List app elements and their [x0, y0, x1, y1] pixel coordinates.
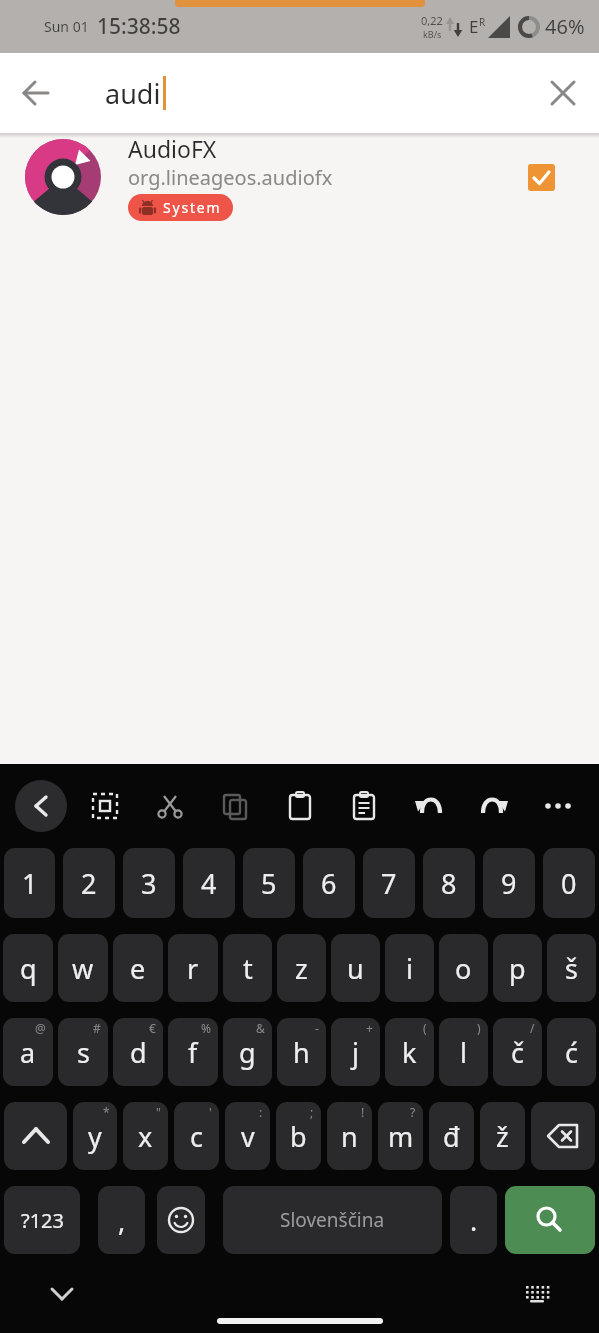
button[interactable]: [527, 57, 599, 129]
button[interactable]: [144, 780, 196, 832]
button[interactable]: [531, 1102, 595, 1170]
button[interactable]: [505, 1186, 595, 1254]
staticText: R: [479, 15, 486, 29]
button[interactable]: 4: [183, 848, 235, 918]
button[interactable]: ć: [547, 1018, 596, 1086]
staticText: 46%: [545, 13, 585, 40]
button[interactable]: p: [493, 934, 542, 1002]
staticText: .: [470, 1202, 478, 1239]
button[interactable]: d: [113, 1018, 163, 1086]
button[interactable]: u: [331, 934, 380, 1002]
button[interactable]: 6: [303, 848, 355, 918]
button[interactable]: e: [113, 934, 163, 1002]
staticText: 6: [321, 865, 337, 902]
button[interactable]: [209, 780, 261, 832]
staticText: c: [190, 1118, 203, 1155]
button[interactable]: m: [378, 1102, 423, 1170]
staticText: E: [469, 15, 479, 38]
button[interactable]: t: [223, 934, 272, 1002]
button[interactable]: o: [439, 934, 488, 1002]
staticText: 7: [381, 865, 397, 902]
button[interactable]: 0: [543, 848, 595, 918]
staticText: n: [341, 1118, 358, 1155]
button[interactable]: [274, 780, 326, 832]
staticText: v: [241, 1118, 255, 1155]
button[interactable]: s: [58, 1018, 108, 1086]
button[interactable]: AudioFX: [0, 133, 599, 221]
button[interactable]: y: [73, 1102, 117, 1170]
staticText: -: [315, 1020, 319, 1036]
button[interactable]: [403, 780, 455, 832]
button[interactable]: .: [450, 1186, 497, 1254]
button[interactable]: [468, 780, 520, 832]
button[interactable]: h: [277, 1018, 326, 1086]
button[interactable]: [79, 780, 131, 832]
button[interactable]: ,: [98, 1186, 145, 1254]
button[interactable]: ž: [480, 1102, 525, 1170]
staticText: y: [88, 1118, 102, 1155]
button[interactable]: l: [439, 1018, 488, 1086]
staticText: ć: [565, 1034, 578, 1071]
button[interactable]: ?123: [4, 1186, 80, 1254]
staticText: !: [361, 1104, 365, 1120]
button[interactable]: q: [3, 934, 53, 1002]
button[interactable]: r: [168, 934, 218, 1002]
staticText: System: [163, 198, 222, 217]
button[interactable]: [532, 780, 584, 832]
staticText: @: [35, 1020, 46, 1036]
staticText: i: [406, 950, 413, 987]
staticText: &: [256, 1020, 265, 1036]
staticText: a: [20, 1034, 36, 1071]
staticText: b: [290, 1118, 307, 1155]
button[interactable]: đ: [429, 1102, 474, 1170]
button[interactable]: 5: [243, 848, 295, 918]
button[interactable]: 9: [483, 848, 535, 918]
button[interactable]: 1: [4, 848, 55, 918]
staticText: (: [423, 1020, 427, 1036]
button[interactable]: Slovenščina: [223, 1186, 442, 1254]
staticText: 3: [141, 865, 157, 902]
staticText: g: [239, 1034, 256, 1071]
staticText: d: [130, 1034, 147, 1071]
button[interactable]: 7: [363, 848, 415, 918]
staticText: 0,22: [421, 13, 443, 28]
button[interactable]: i: [385, 934, 434, 1002]
staticText: 1: [22, 865, 38, 902]
staticText: AudioFX: [128, 133, 217, 164]
button[interactable]: a: [3, 1018, 53, 1086]
button[interactable]: b: [276, 1102, 321, 1170]
staticText: :: [259, 1104, 263, 1120]
button[interactable]: v: [225, 1102, 270, 1170]
button[interactable]: [4, 1102, 67, 1170]
button[interactable]: [15, 780, 67, 832]
button[interactable]: č: [493, 1018, 542, 1086]
staticText: org.lineageos.audiofx: [128, 164, 333, 191]
button[interactable]: [528, 164, 555, 191]
button[interactable]: [515, 1272, 559, 1316]
button[interactable]: 3: [123, 848, 175, 918]
button[interactable]: [157, 1186, 205, 1254]
button[interactable]: x: [123, 1102, 168, 1170]
button[interactable]: [0, 57, 72, 129]
button[interactable]: f: [168, 1018, 218, 1086]
button[interactable]: 2: [63, 848, 115, 918]
staticText: k: [402, 1034, 417, 1071]
button[interactable]: z: [277, 934, 326, 1002]
button[interactable]: w: [58, 934, 108, 1002]
staticText: ": [156, 1104, 161, 1120]
button[interactable]: 8: [423, 848, 475, 918]
button[interactable]: g: [223, 1018, 272, 1086]
staticText: #: [93, 1020, 101, 1036]
staticText: 8: [441, 865, 457, 902]
staticText: kB/s: [423, 28, 442, 40]
staticText: w: [72, 950, 94, 987]
button[interactable]: [40, 1272, 84, 1316]
button[interactable]: n: [327, 1102, 372, 1170]
button[interactable]: j: [331, 1018, 380, 1086]
staticText: /: [530, 1020, 535, 1036]
button[interactable]: k: [385, 1018, 434, 1086]
staticText: ,: [118, 1202, 126, 1239]
button[interactable]: [338, 780, 390, 832]
button[interactable]: c: [174, 1102, 219, 1170]
button[interactable]: š: [547, 934, 596, 1002]
